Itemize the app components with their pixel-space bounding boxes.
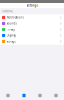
staticText: Storage [6, 40, 16, 43]
button[interactable]: Sounds [0, 20, 64, 26]
staticText: Display [6, 34, 15, 37]
staticText: Notifications [6, 16, 23, 19]
button[interactable]: Notifications [0, 14, 64, 20]
button[interactable]: Privacy [0, 26, 64, 32]
button[interactable]: Search [16, 91, 32, 100]
staticText: GENERAL [2, 9, 13, 13]
button[interactable]: Storage [0, 38, 64, 44]
staticText: Privacy [6, 28, 14, 31]
staticText: Settings [26, 4, 37, 7]
button[interactable]: Library [32, 91, 48, 100]
staticText: Sounds [6, 22, 16, 25]
button[interactable]: Display [0, 32, 64, 38]
button[interactable]: Settings [48, 91, 64, 100]
button[interactable]: Today [0, 91, 16, 100]
